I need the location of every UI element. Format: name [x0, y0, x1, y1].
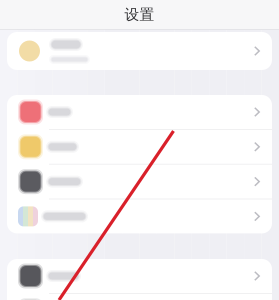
button[interactable]: Control Centre [7, 294, 272, 300]
staticText: 设置 [124, 5, 154, 23]
button[interactable]: General [7, 259, 272, 293]
button[interactable]: Cellular [7, 199, 272, 233]
button[interactable]: Airplane Mode [7, 95, 272, 129]
button[interactable]: Wi-Fi [7, 130, 272, 164]
button[interactable]: Bluetooth [7, 165, 272, 199]
button[interactable]: Apple ID [7, 32, 272, 70]
